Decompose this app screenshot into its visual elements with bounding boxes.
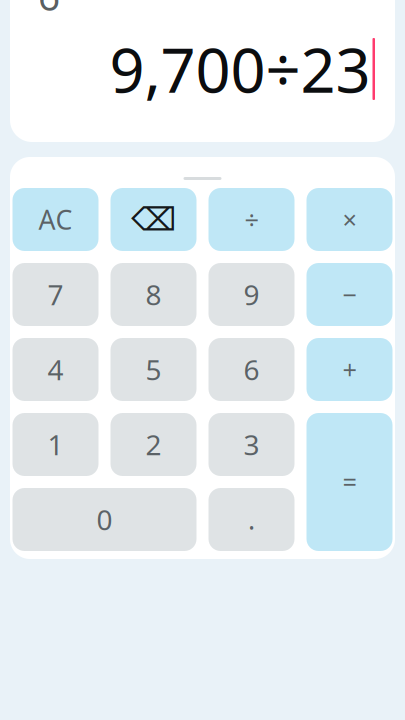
button[interactable]: 9 <box>208 263 294 326</box>
button[interactable]: 0 <box>12 488 196 551</box>
button[interactable]: 6 <box>208 338 294 401</box>
staticText: 6 <box>243 351 259 388</box>
button[interactable]: ÷ <box>208 188 294 251</box>
staticText: 4 <box>47 351 63 388</box>
button[interactable]: × <box>306 188 392 251</box>
staticText: 1 <box>47 426 63 463</box>
button[interactable]: 2 <box>110 413 196 476</box>
button[interactable]: 7 <box>12 263 98 326</box>
staticText: + <box>342 353 356 386</box>
staticText: . <box>248 502 255 537</box>
staticText: 2 <box>145 426 161 463</box>
staticText: AC <box>38 202 72 237</box>
staticText: ÷ <box>244 203 258 236</box>
button[interactable]: − <box>306 263 392 326</box>
staticText: 9,700÷23 <box>109 28 370 110</box>
staticText: 9 <box>243 276 259 313</box>
staticText: 7 <box>47 276 63 313</box>
staticText: 421.7391304347826 <box>38 0 378 21</box>
button[interactable]: Delete <box>110 188 196 251</box>
staticText: 5 <box>145 351 161 388</box>
staticText: − <box>342 278 356 311</box>
button[interactable]: = <box>306 413 392 551</box>
staticText: = <box>342 465 356 499</box>
staticText: × <box>342 203 356 236</box>
staticText: 0 <box>96 501 112 538</box>
staticText: 3 <box>243 426 259 463</box>
button[interactable]: + <box>306 338 392 401</box>
button[interactable]: AC <box>12 188 98 251</box>
staticText: ⌫ <box>131 201 176 238</box>
button[interactable]: . <box>208 488 294 551</box>
button[interactable]: 5 <box>110 338 196 401</box>
staticText: 8 <box>145 276 161 313</box>
button[interactable]: 3 <box>208 413 294 476</box>
button[interactable]: 8 <box>110 263 196 326</box>
button[interactable]: 4 <box>12 338 98 401</box>
button[interactable]: 1 <box>12 413 98 476</box>
